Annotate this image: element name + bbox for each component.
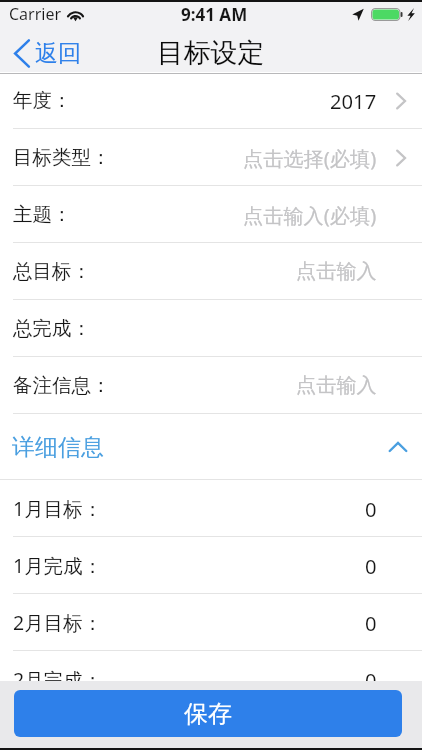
- staticText: 返回: [35, 39, 81, 68]
- button[interactable]: 总完成：: [0, 300, 422, 357]
- staticText: 总完成：: [13, 316, 91, 341]
- button[interactable]: 保存: [14, 690, 402, 737]
- button[interactable]: 1月目标：: [0, 480, 422, 537]
- staticText: 1月完成：: [13, 552, 103, 579]
- button[interactable]: 1月完成：: [0, 537, 422, 594]
- other: Back: [14, 39, 30, 68]
- button[interactable]: 2月完成：: [0, 651, 422, 681]
- button[interactable]: 总目标：: [0, 243, 422, 300]
- staticText: 2月完成：: [13, 666, 103, 681]
- staticText: 保存: [184, 699, 232, 729]
- staticText: 0: [365, 609, 377, 637]
- staticText: 2017: [330, 87, 377, 115]
- staticText: 0: [365, 552, 377, 580]
- staticText: 1月目标：: [13, 495, 103, 522]
- staticText: 点击输入(必填): [243, 201, 377, 229]
- staticText: 总目标：: [13, 259, 91, 284]
- staticText: 9:41 AM: [181, 3, 248, 26]
- button[interactable]: Back: [0, 35, 91, 72]
- staticText: 目标设定: [157, 36, 265, 70]
- staticText: 年度：: [13, 88, 72, 113]
- staticText: 点击输入: [296, 373, 377, 398]
- staticText: 2月目标：: [13, 609, 103, 636]
- staticText: 点击输入: [296, 259, 377, 284]
- staticText: Carrier: [9, 3, 62, 25]
- staticText: 点击选择(必填): [243, 144, 377, 172]
- staticText: 0: [365, 666, 377, 681]
- button[interactable]: 备注信息：: [0, 357, 422, 414]
- button[interactable]: 年度：: [0, 72, 422, 129]
- button[interactable]: 2月目标：: [0, 594, 422, 651]
- staticText: 备注信息：: [13, 373, 111, 398]
- staticText: 目标类型：: [13, 145, 111, 170]
- staticText: 详细信息: [12, 433, 104, 462]
- button[interactable]: 详细信息: [0, 414, 422, 480]
- button[interactable]: 目标类型：: [0, 129, 422, 186]
- staticText: 主题：: [13, 202, 72, 227]
- button[interactable]: 主题：: [0, 186, 422, 243]
- staticText: 0: [365, 495, 377, 523]
